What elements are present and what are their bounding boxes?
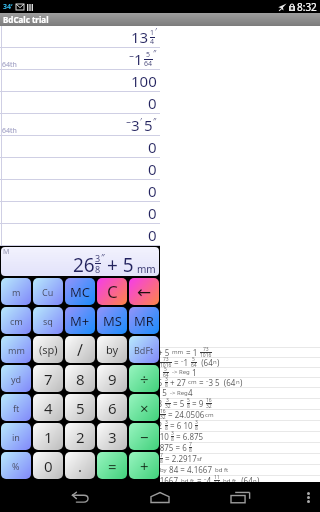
button[interactable]: ⁻1 [0, 48, 160, 70]
staticText: 8:32 [297, 0, 317, 13]
staticText: n [236, 378, 240, 386]
button[interactable]: 5 [65, 394, 95, 421]
button[interactable]: 0 [0, 180, 160, 202]
button[interactable]: − [129, 423, 159, 450]
button[interactable]: 13 [160, 398, 320, 409]
button[interactable]: m [1, 278, 31, 305]
staticText: (sp) [39, 342, 58, 357]
staticText: 8 [189, 447, 192, 454]
button[interactable]: by [97, 336, 127, 363]
staticText: + 27 [168, 377, 188, 387]
button[interactable]: MS [97, 307, 127, 334]
button[interactable]: MR [129, 307, 159, 334]
button[interactable]: = [97, 452, 127, 479]
staticText: + 5 [107, 252, 134, 276]
button[interactable]: in [1, 423, 31, 450]
staticText: 6 10 [160, 431, 171, 442]
staticText: by [106, 342, 119, 357]
staticText: = 6 10 [168, 420, 195, 431]
staticText: ′ [155, 26, 157, 37]
button[interactable]: M+ [65, 307, 95, 334]
button[interactable]: % [1, 452, 31, 479]
button[interactable]: BdCalc trial [0, 13, 320, 26]
button[interactable]: 6 [160, 464, 320, 475]
button[interactable]: 26 [160, 377, 320, 387]
staticText: cm [205, 411, 214, 419]
staticText: . [78, 456, 83, 476]
button[interactable]: C [97, 278, 127, 305]
staticText: 1 [190, 367, 197, 377]
button[interactable]: ⁻1 [160, 367, 320, 377]
button[interactable]: ← [129, 278, 159, 305]
button[interactable]: 8 [65, 365, 95, 392]
staticText: 16 [206, 397, 212, 404]
button[interactable]: Back [58, 482, 102, 512]
button[interactable]: 9 [97, 365, 127, 392]
button[interactable]: (sp) [33, 336, 63, 363]
button[interactable]: 1 [160, 357, 320, 367]
staticText: ⁻1 [160, 367, 163, 377]
button[interactable]: Recent apps [218, 482, 262, 512]
button[interactable]: 7 [33, 365, 63, 392]
button[interactable]: 6.875 = 6 [160, 442, 320, 453]
button[interactable]: sq [33, 307, 63, 334]
button[interactable]: 0 [0, 136, 160, 158]
staticText: = ⁻1 [172, 357, 191, 367]
button[interactable]: 4.1667 [160, 475, 320, 482]
button[interactable]: 6 10 [160, 431, 320, 442]
button[interactable]: Home [138, 482, 182, 512]
staticText: ÷ [140, 369, 149, 389]
button[interactable]: 0 [0, 158, 160, 180]
staticText: 3 [95, 252, 101, 264]
button[interactable]: 1 [33, 423, 63, 450]
button[interactable]: + [129, 452, 159, 479]
staticText: = ⁻3 5 (64 [197, 377, 236, 387]
button[interactable]: 6 [97, 394, 127, 421]
button[interactable]: M [1, 247, 159, 276]
button[interactable]: BdFt [129, 336, 159, 363]
button[interactable]: 3 [160, 347, 320, 357]
button[interactable]: 0 [0, 224, 160, 246]
staticText: 6.875 = 6 [160, 442, 189, 453]
button[interactable]: ⁻3 5 [160, 387, 320, 398]
staticText: cm [10, 315, 23, 327]
button[interactable]: / [65, 336, 95, 363]
button[interactable]: 6 [160, 453, 320, 464]
button[interactable]: 4 [33, 394, 63, 421]
button[interactable]: 0 [0, 92, 160, 114]
button[interactable]: ft [1, 394, 31, 421]
staticText: = 5 [171, 398, 187, 409]
staticText: mm [8, 344, 25, 356]
button[interactable]: MC [65, 278, 95, 305]
staticText: 100 [131, 71, 157, 91]
staticText: 32 [160, 414, 166, 421]
staticText: 0 [148, 225, 157, 245]
button[interactable]: 3 [97, 423, 127, 450]
button[interactable]: cm [1, 307, 31, 334]
button[interactable]: × [129, 394, 159, 421]
button[interactable]: mm [1, 336, 31, 363]
button[interactable]: 13 [0, 26, 160, 48]
button[interactable]: . [65, 452, 95, 479]
button[interactable]: ÷ [129, 365, 159, 392]
button[interactable]: 82 [160, 420, 320, 431]
button[interactable]: 9 [160, 409, 320, 420]
staticText: 32 [206, 403, 212, 410]
staticText: Cu [42, 286, 54, 298]
button[interactable]: yd [1, 365, 31, 392]
button[interactable]: 2 [65, 423, 95, 450]
staticText: % [12, 460, 20, 472]
button[interactable]: More options [296, 482, 320, 512]
button[interactable]: 0 [0, 202, 160, 224]
staticText: BdFt [134, 344, 154, 356]
staticText: sf [197, 455, 202, 463]
button[interactable]: 100 [0, 70, 160, 92]
staticText: 8 [187, 403, 190, 410]
staticText: (64 [237, 475, 253, 482]
button[interactable]: ⁻3 [0, 114, 160, 136]
staticText: 0 [44, 456, 53, 476]
staticText: ) [257, 475, 260, 482]
button[interactable]: 0 [33, 452, 63, 479]
staticText: 16 [160, 408, 166, 415]
button[interactable]: Cu [33, 278, 63, 305]
